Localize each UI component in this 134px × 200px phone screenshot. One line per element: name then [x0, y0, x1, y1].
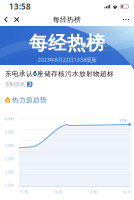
staticText: 热力值趋势	[12, 96, 47, 104]
staticText: 1,500	[4, 183, 13, 188]
staticText: 实时排名	[5, 81, 25, 88]
staticText: 2,000	[4, 169, 13, 175]
staticText: 13:30	[88, 189, 97, 194]
staticText: 3790	[119, 118, 127, 123]
staticText: 13:58	[9, 1, 31, 12]
button[interactable]: Close	[11, 13, 22, 26]
staticText: 2023年8月22日13:58更新	[37, 56, 96, 63]
staticText: 每经热榜	[53, 15, 81, 24]
staticText: 2,500	[4, 156, 13, 161]
staticText: 3,500	[4, 129, 13, 135]
staticText: 每经热榜	[29, 32, 105, 55]
staticText: 11:30	[19, 189, 28, 194]
staticText: 东电承认6座储存核污水放射物超标	[5, 69, 114, 78]
staticText: 14:30	[122, 189, 131, 194]
button[interactable]: 实时排名	[5, 81, 32, 88]
button[interactable]: Back	[0, 13, 11, 26]
staticText: 12:30	[53, 189, 62, 194]
staticText: 4,000	[4, 116, 13, 121]
staticText: 2	[28, 81, 31, 88]
staticText: 3,000	[4, 143, 13, 148]
button[interactable]: More	[118, 14, 134, 25]
